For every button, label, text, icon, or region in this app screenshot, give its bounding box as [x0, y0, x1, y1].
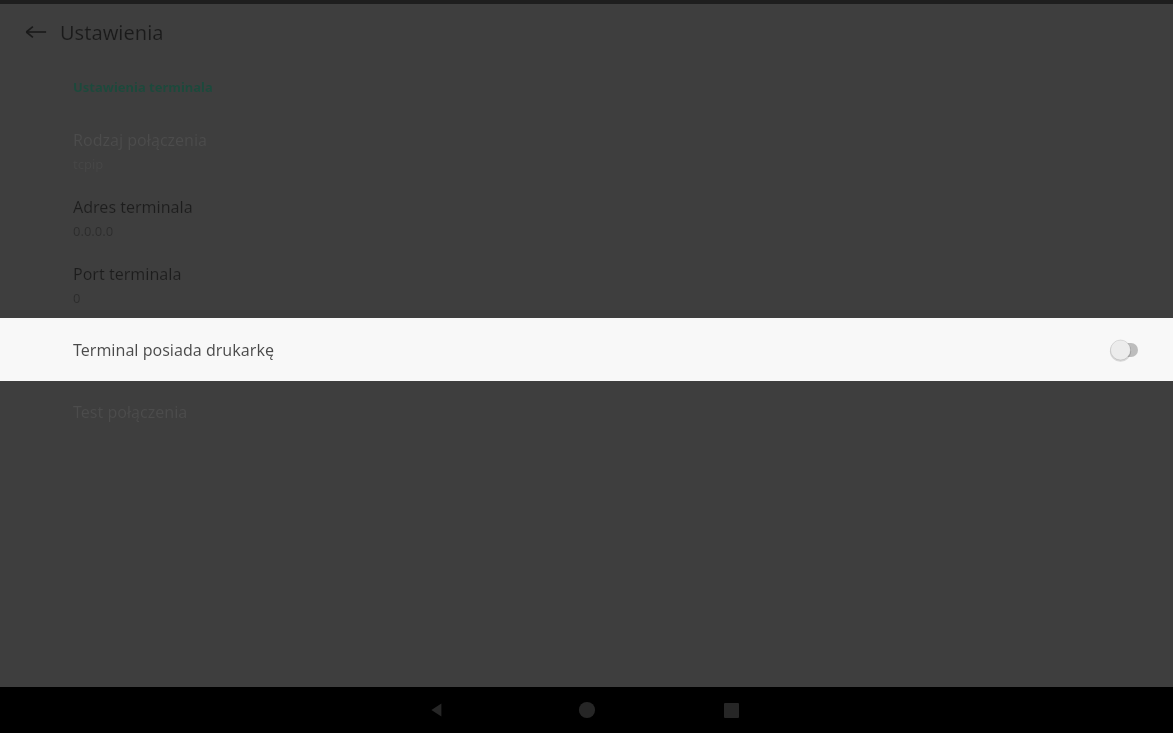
button[interactable]: Terminal posiada drukarkę: [0, 318, 1173, 381]
staticText: 0.0.0.0: [73, 222, 114, 240]
button[interactable]: Terminal posiada drukarkę toggle: [1109, 335, 1151, 365]
button[interactable]: Recent apps: [145, 687, 1173, 733]
button[interactable]: Home: [0, 687, 1173, 733]
staticText: Ustawienia: [60, 19, 164, 46]
staticText: 0: [73, 289, 81, 307]
staticText: Port terminala: [73, 263, 182, 285]
staticText: Rodzaj połączenia: [73, 129, 208, 151]
staticText: Test połączenia: [73, 401, 188, 423]
button[interactable]: Back: [18, 14, 54, 50]
staticText: Ustawienia terminala: [73, 78, 213, 96]
staticText: Terminal posiada drukarkę: [73, 339, 274, 361]
button[interactable]: Back: [0, 687, 1023, 733]
staticText: Adres terminala: [73, 196, 193, 218]
